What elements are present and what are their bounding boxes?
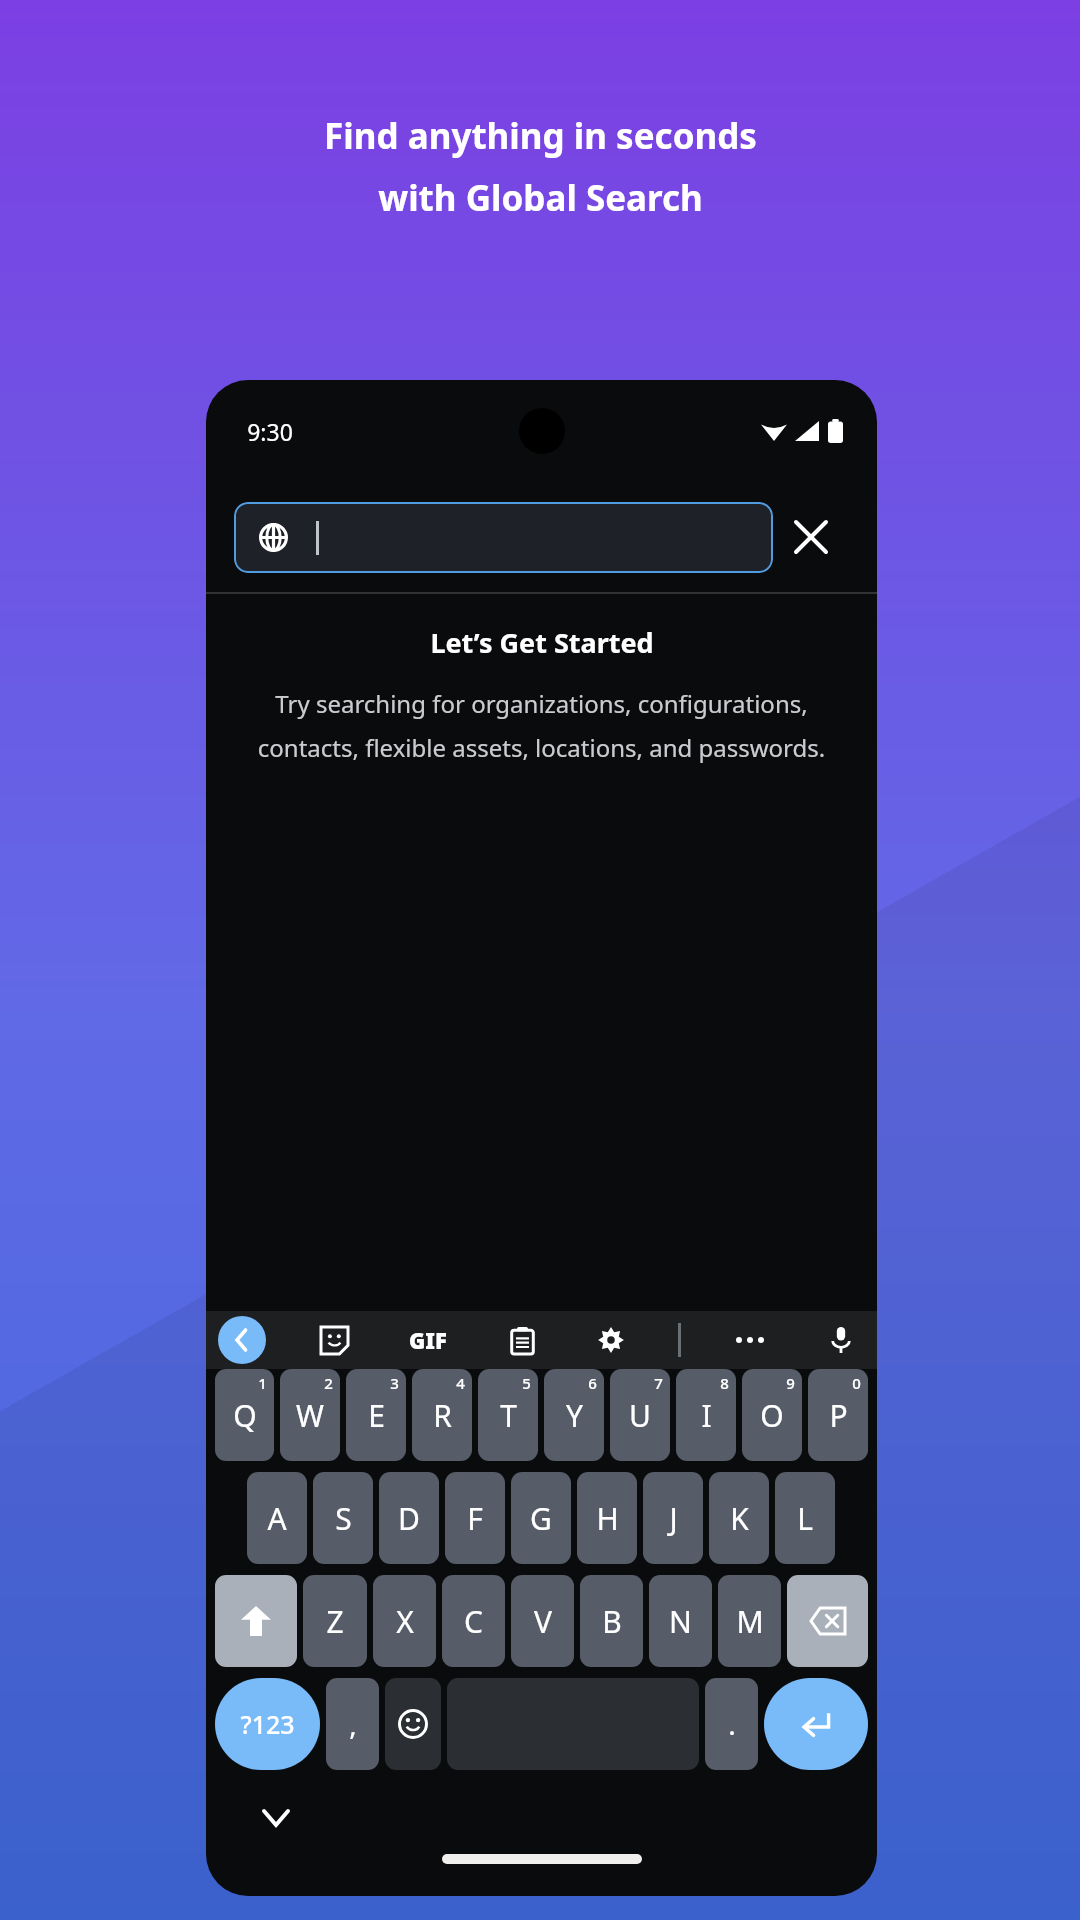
button[interactable]: B <box>580 1575 643 1667</box>
staticText: Let’s Get Started <box>430 624 654 661</box>
button[interactable]: W <box>280 1369 340 1461</box>
staticText: L <box>797 1498 813 1539</box>
staticText: D <box>398 1498 420 1539</box>
staticText: K <box>730 1498 749 1539</box>
staticText: I <box>701 1395 712 1436</box>
button[interactable]: G <box>511 1472 571 1564</box>
staticText: W <box>296 1395 324 1436</box>
staticText: N <box>669 1601 692 1642</box>
button[interactable]: GIF <box>401 1313 455 1367</box>
button[interactable]: Stickers <box>312 1318 356 1362</box>
staticText: M <box>736 1601 764 1642</box>
button[interactable]: U <box>610 1369 670 1461</box>
button[interactable]: X <box>373 1575 436 1667</box>
staticText: 2 <box>324 1373 333 1393</box>
button[interactable]: Q <box>215 1369 274 1461</box>
button[interactable]: Z <box>303 1575 367 1667</box>
staticText: GIF <box>409 1325 447 1355</box>
staticText: F <box>467 1498 483 1539</box>
staticText: R <box>433 1395 452 1436</box>
staticText: 6 <box>588 1373 597 1393</box>
button[interactable]: E <box>346 1369 406 1461</box>
button[interactable]: T <box>478 1369 538 1461</box>
button[interactable]: Clipboard <box>500 1318 544 1362</box>
staticText: G <box>530 1498 552 1539</box>
staticText: 3 <box>390 1373 399 1393</box>
button[interactable]: Voice input <box>819 1318 863 1362</box>
button[interactable]: A <box>247 1472 307 1564</box>
staticText: 5 <box>522 1373 531 1393</box>
staticText: 7 <box>654 1373 663 1393</box>
button[interactable]: H <box>577 1472 637 1564</box>
button[interactable]: . <box>705 1678 758 1770</box>
button[interactable]: N <box>649 1575 712 1667</box>
staticText: H <box>596 1498 619 1539</box>
staticText: A <box>267 1498 287 1539</box>
staticText: T <box>500 1395 517 1436</box>
staticText: , <box>349 1705 357 1743</box>
staticText: Find anything in seconds <box>324 112 757 160</box>
button[interactable]: K <box>709 1472 769 1564</box>
staticText: E <box>368 1395 385 1436</box>
button[interactable] <box>215 1575 297 1667</box>
button[interactable]: I <box>676 1369 736 1461</box>
button[interactable]: L <box>775 1472 835 1564</box>
staticText: Y <box>566 1395 583 1436</box>
staticText: 1 <box>258 1373 267 1393</box>
button[interactable] <box>234 502 773 573</box>
button[interactable]: J <box>643 1472 703 1564</box>
button[interactable]: , <box>326 1678 379 1770</box>
button[interactable]: Close search <box>773 499 849 575</box>
staticText: Try searching for organizations, configu… <box>252 687 831 764</box>
staticText: 0 <box>852 1373 861 1393</box>
staticText: X <box>396 1601 414 1642</box>
button[interactable] <box>385 1678 441 1770</box>
button[interactable]: Back <box>218 1316 266 1364</box>
staticText: V <box>534 1601 552 1642</box>
staticText: 4 <box>456 1373 465 1393</box>
button[interactable]: O <box>742 1369 802 1461</box>
button[interactable]: D <box>379 1472 439 1564</box>
button[interactable]: S <box>313 1472 373 1564</box>
staticText: C <box>464 1601 483 1642</box>
staticText: J <box>669 1498 678 1539</box>
button[interactable]: P <box>808 1369 868 1461</box>
staticText: 9:30 <box>247 416 293 447</box>
button[interactable]: Settings <box>589 1318 633 1362</box>
staticText: 9 <box>786 1373 795 1393</box>
button[interactable]: V <box>511 1575 574 1667</box>
staticText: Q <box>233 1395 257 1436</box>
button[interactable]: F <box>445 1472 505 1564</box>
staticText: P <box>829 1395 848 1436</box>
staticText: S <box>335 1498 352 1539</box>
staticText: U <box>629 1395 651 1436</box>
staticText: Z <box>326 1601 344 1642</box>
button[interactable]: Enter <box>764 1678 868 1770</box>
button[interactable]: ?123 <box>215 1678 320 1770</box>
button[interactable]: Hide keyboard <box>252 1794 300 1842</box>
staticText: 8 <box>720 1373 729 1393</box>
staticText: O <box>760 1395 784 1436</box>
button[interactable] <box>787 1575 868 1667</box>
button[interactable]: Y <box>544 1369 604 1461</box>
button[interactable]: C <box>442 1575 505 1667</box>
staticText: ?123 <box>240 1707 295 1741</box>
staticText: . <box>728 1705 736 1743</box>
button[interactable]: M <box>718 1575 781 1667</box>
staticText: B <box>602 1601 622 1642</box>
button[interactable]: More options <box>726 1316 774 1364</box>
button[interactable]: R <box>412 1369 472 1461</box>
staticText: with Global Search <box>378 174 703 222</box>
